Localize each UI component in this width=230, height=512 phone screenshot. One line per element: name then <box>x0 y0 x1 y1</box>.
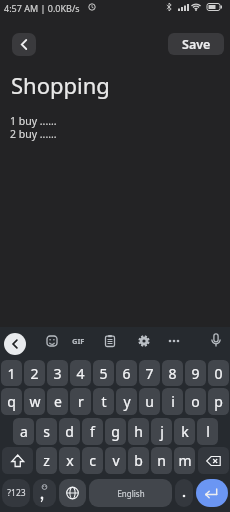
button[interactable]: s <box>36 418 57 445</box>
staticText: GIF <box>72 336 85 346</box>
button[interactable]: k <box>174 418 195 445</box>
button[interactable]: 1 <box>1 360 22 386</box>
button[interactable]: 3 <box>47 360 68 386</box>
button[interactable]: 2 <box>24 360 45 386</box>
staticText: i <box>171 392 175 411</box>
staticText: r <box>78 392 84 411</box>
staticText: 5 <box>99 364 108 383</box>
staticText: k <box>181 422 189 441</box>
staticText: y <box>123 392 131 411</box>
button[interactable] <box>33 479 56 507</box>
button[interactable]: g <box>105 418 126 445</box>
button[interactable]: v <box>105 447 126 474</box>
staticText: x <box>66 451 74 470</box>
staticText: a <box>20 422 28 441</box>
button[interactable]: b <box>128 447 149 474</box>
button[interactable]: a <box>13 418 34 445</box>
staticText: d <box>65 422 74 441</box>
staticText: w <box>29 392 41 411</box>
button[interactable]: u <box>139 388 160 415</box>
button[interactable]: e <box>47 388 68 415</box>
button[interactable] <box>2 447 33 474</box>
staticText: s <box>43 422 50 441</box>
button[interactable] <box>175 479 193 507</box>
staticText: 4 <box>76 364 85 383</box>
staticText: p <box>214 392 223 411</box>
button[interactable]: 9 <box>185 360 206 386</box>
staticText: 1 buy ...... 2 buy ...... <box>10 114 57 141</box>
staticText: c <box>89 451 96 470</box>
staticText: English <box>117 488 145 499</box>
staticText: j <box>160 422 164 441</box>
button[interactable]: d <box>59 418 80 445</box>
button[interactable]: z <box>36 447 57 474</box>
staticText: g <box>111 422 120 441</box>
staticText: e <box>54 392 62 411</box>
staticText: u <box>145 392 154 411</box>
button[interactable]: n <box>151 447 172 474</box>
button[interactable]: f <box>82 418 103 445</box>
button[interactable]: l <box>197 418 218 445</box>
staticText: n <box>157 451 166 470</box>
button[interactable]: 6 <box>116 360 137 386</box>
staticText: b <box>134 451 143 470</box>
button[interactable]: w <box>24 388 45 415</box>
button[interactable] <box>196 479 228 507</box>
staticText: Save <box>182 36 211 53</box>
staticText: z <box>43 451 50 470</box>
button[interactable] <box>12 33 36 56</box>
staticText: 3 <box>53 364 62 383</box>
button[interactable]: 0 <box>208 360 229 386</box>
button[interactable]: j <box>151 418 172 445</box>
button[interactable]: y <box>116 388 137 415</box>
staticText: q <box>7 392 16 411</box>
button[interactable]: 4 <box>70 360 91 386</box>
staticText: f <box>90 422 95 441</box>
staticText: 8 <box>168 364 177 383</box>
staticText: ?123 <box>7 487 26 499</box>
button[interactable]: h <box>128 418 149 445</box>
button[interactable] <box>198 447 229 474</box>
staticText: 0 <box>214 364 223 383</box>
button[interactable]: English <box>89 479 172 507</box>
staticText: t <box>101 392 107 411</box>
button[interactable]: 7 <box>139 360 160 386</box>
staticText: 1 <box>7 364 16 383</box>
staticText: Shopping <box>11 70 110 100</box>
button[interactable]: 5 <box>93 360 114 386</box>
button[interactable]: 8 <box>162 360 183 386</box>
button[interactable]: Save <box>168 33 224 55</box>
button[interactable]: t <box>93 388 114 415</box>
staticText: 6 <box>122 364 131 383</box>
button[interactable] <box>99 330 121 352</box>
button[interactable] <box>133 330 155 352</box>
button[interactable]: i <box>162 388 183 415</box>
button[interactable]: q <box>1 388 22 415</box>
staticText: h <box>134 422 143 441</box>
button[interactable]: o <box>185 388 206 415</box>
button[interactable] <box>4 333 26 355</box>
button[interactable] <box>41 330 63 352</box>
staticText: 9 <box>191 364 200 383</box>
button[interactable]: x <box>59 447 80 474</box>
button[interactable] <box>163 330 185 352</box>
staticText: 4:57 AM | 0.0KB/s <box>4 2 80 14</box>
button[interactable] <box>68 330 90 352</box>
staticText: 2 <box>30 364 39 383</box>
button[interactable]: r <box>70 388 91 415</box>
button[interactable]: m <box>174 447 195 474</box>
button[interactable] <box>205 330 227 352</box>
staticText: 7 <box>145 364 154 383</box>
staticText: o <box>191 392 200 411</box>
staticText: v <box>112 451 120 470</box>
button[interactable]: p <box>208 388 229 415</box>
button[interactable] <box>59 479 86 507</box>
staticText: l <box>206 422 210 441</box>
button[interactable]: ?123 <box>2 479 30 507</box>
button[interactable]: c <box>82 447 103 474</box>
staticText: m <box>178 451 192 470</box>
